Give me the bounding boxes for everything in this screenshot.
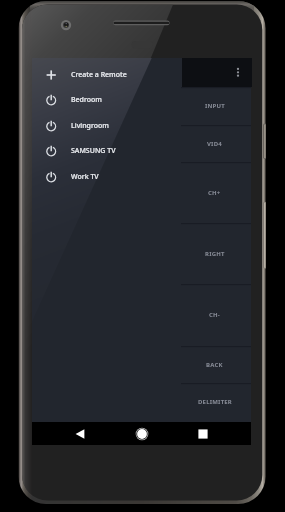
button[interactable]: SAMSUNG TV — [32, 140, 150, 162]
button[interactable]: RIGHT — [32, 223, 251, 284]
button[interactable]: VID4 — [32, 125, 251, 162]
button[interactable]: INPUT — [32, 87, 251, 125]
staticText: Bedroom — [71, 95, 102, 105]
button[interactable]: CH- — [32, 284, 251, 346]
button[interactable]: Livingroom — [32, 115, 150, 137]
button[interactable]: BACK — [32, 346, 251, 383]
staticText: Work TV — [71, 172, 99, 182]
button[interactable]: Recent apps — [191, 422, 215, 445]
staticText: VID4 — [207, 140, 222, 148]
staticText: SAMSUNG TV — [71, 146, 116, 156]
button[interactable]: More options — [227, 62, 249, 84]
button[interactable]: Bedroom — [32, 89, 150, 111]
button[interactable]: Home — [130, 422, 154, 445]
staticText: CH+ — [208, 189, 221, 197]
staticText: DELIMITER — [198, 398, 232, 406]
button[interactable] — [182, 58, 252, 87]
staticText: Livingroom — [71, 121, 109, 131]
button[interactable]: DELIMITER — [32, 383, 251, 420]
staticText: INPUT — [205, 102, 225, 110]
staticText: Create a Remote — [71, 70, 127, 80]
button[interactable]: CH+ — [32, 162, 251, 223]
staticText: CH- — [209, 311, 220, 319]
staticText: RIGHT — [205, 250, 225, 258]
button[interactable]: Work TV — [32, 166, 150, 188]
button[interactable]: Back — [68, 422, 92, 445]
staticText: BACK — [206, 361, 223, 369]
button[interactable]: Create a Remote — [32, 64, 150, 86]
